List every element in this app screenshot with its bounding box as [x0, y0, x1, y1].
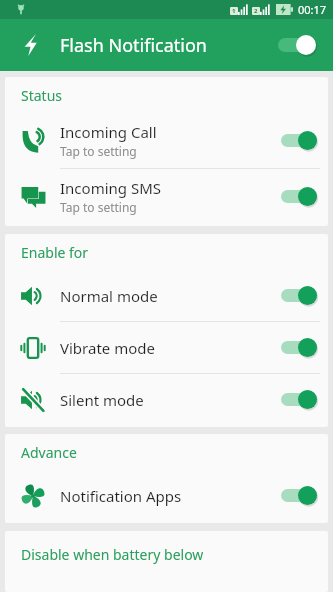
button[interactable]: Flash [13, 28, 47, 62]
staticText: Normal mode [60, 286, 158, 306]
button[interactable]: Incoming SMS [5, 169, 328, 224]
staticText: Notification Apps [60, 486, 182, 506]
staticText: Tap to setting [60, 199, 137, 215]
staticText: Disable when battery below [21, 545, 204, 564]
staticText: Incoming SMS [60, 178, 161, 198]
staticText: Incoming Call [60, 122, 157, 142]
button[interactable]: Incoming SMS toggle [270, 169, 328, 224]
button[interactable]: Incoming Call [5, 113, 328, 168]
staticText: 00:17 [298, 2, 327, 17]
button[interactable]: Vibrate mode toggle [270, 322, 328, 373]
button[interactable]: Normal mode [5, 270, 328, 321]
button[interactable]: Incoming Call toggle [270, 113, 328, 168]
staticText: Vibrate mode [60, 338, 155, 358]
staticText: 1 [232, 7, 236, 15]
staticText: Advance [21, 443, 77, 462]
staticText: Silent mode [60, 390, 144, 410]
staticText: Status [21, 86, 63, 105]
button[interactable]: Vibrate mode [5, 322, 328, 373]
button[interactable]: Notification Apps toggle [270, 470, 328, 521]
staticText: 2 [254, 7, 258, 15]
button[interactable]: Normal mode toggle [270, 270, 328, 321]
staticText: Tap to setting [60, 143, 137, 159]
staticText: Flash Notification [60, 33, 207, 58]
button[interactable]: Notification Apps [5, 470, 328, 521]
button[interactable]: Silent mode toggle [270, 374, 328, 425]
button[interactable]: Master switch [271, 27, 323, 63]
button[interactable]: Silent mode [5, 374, 328, 425]
staticText: Enable for [21, 243, 89, 262]
